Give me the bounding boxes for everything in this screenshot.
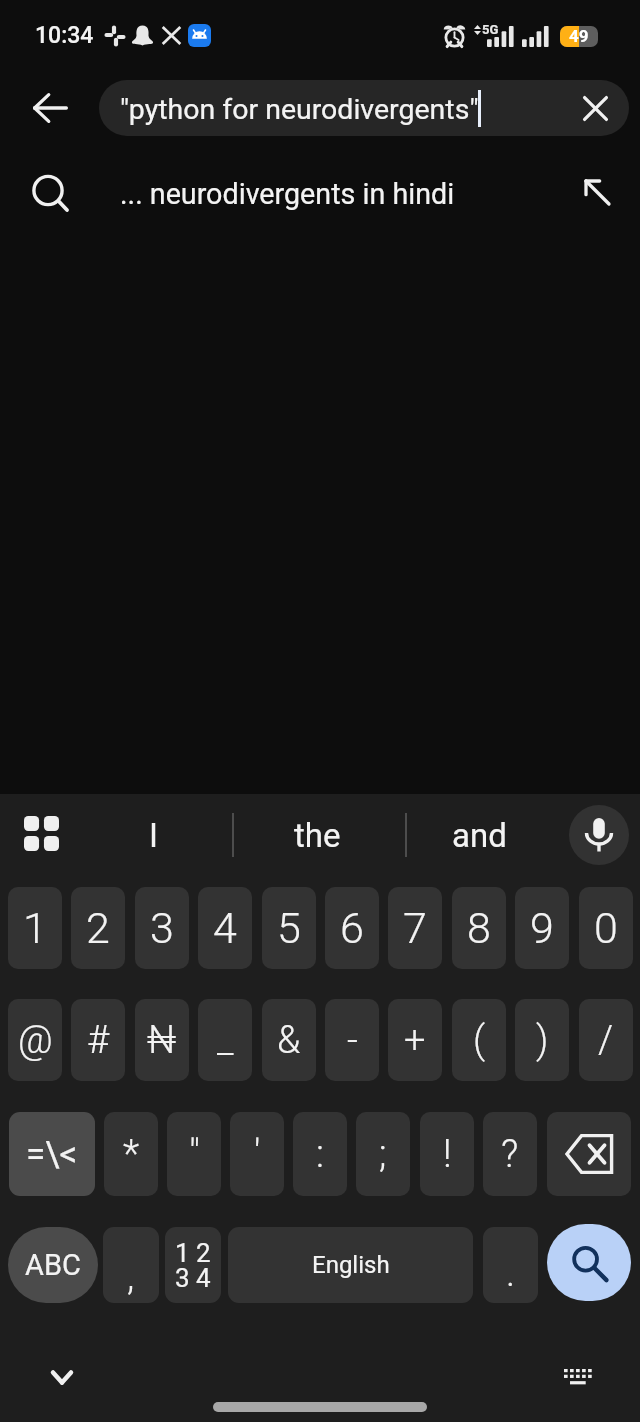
button[interactable]: ' [230, 1112, 284, 1196]
button[interactable]: + [388, 999, 442, 1081]
button[interactable]: Clear search [569, 82, 621, 134]
button[interactable]: ? [483, 1112, 537, 1196]
staticText: 1 2 [175, 1238, 211, 1268]
button[interactable]: ! [420, 1112, 474, 1196]
staticText: ( [473, 1018, 486, 1063]
staticText: English [312, 1251, 390, 1279]
staticText: 4 [213, 903, 237, 953]
button[interactable]: , [103, 1227, 159, 1303]
staticText: ... neurodivergents in hindi [120, 177, 455, 211]
button[interactable]: 8 [452, 887, 506, 969]
button[interactable]: English [228, 1227, 473, 1303]
button[interactable]: and [424, 794, 534, 876]
button[interactable]: "python for neurodivergents" [99, 80, 629, 136]
staticText: & [277, 1018, 301, 1063]
staticText: + [404, 1018, 426, 1063]
staticText: 49 [569, 26, 589, 46]
button[interactable]: Back [18, 76, 82, 140]
staticText: ABC [25, 1248, 81, 1282]
staticText: , [127, 1255, 135, 1300]
button[interactable]: ( [452, 999, 506, 1081]
staticText: * [123, 1132, 140, 1177]
button[interactable]: : [293, 1112, 347, 1196]
staticText: - [347, 1018, 358, 1063]
button[interactable] [547, 1112, 631, 1196]
button[interactable]: 7 [388, 887, 442, 969]
staticText: ' [254, 1132, 261, 1177]
button[interactable]: the [262, 794, 372, 876]
staticText: 3 [150, 903, 174, 953]
staticText: 3 4 [175, 1263, 211, 1293]
button[interactable]: ABC [8, 1227, 98, 1303]
staticText: 10:34 [35, 22, 94, 49]
button[interactable]: Change keyboard [550, 1349, 606, 1405]
staticText: _ [217, 1018, 234, 1063]
staticText: " [189, 1132, 200, 1177]
button[interactable]: I [98, 794, 208, 876]
button[interactable]: 2 [71, 887, 125, 969]
staticText: 1 [23, 903, 47, 953]
staticText: : [316, 1132, 324, 1177]
staticText: 9 [530, 903, 554, 953]
button[interactable]: 3 [135, 887, 189, 969]
button[interactable]: - [325, 999, 379, 1081]
staticText: 5 [277, 903, 301, 953]
button[interactable]: ; [356, 1112, 410, 1196]
staticText: # [87, 1018, 110, 1063]
staticText: I [149, 816, 158, 855]
button[interactable]: " [167, 1112, 221, 1196]
button[interactable]: 4 [198, 887, 252, 969]
staticText: "python for neurodivergents" [120, 93, 479, 126]
button[interactable]: ₦ [135, 999, 189, 1081]
staticText: and [452, 816, 507, 855]
staticText: . [506, 1251, 516, 1296]
staticText: 7 [403, 903, 427, 953]
button[interactable]: ) [515, 999, 569, 1081]
button[interactable] [547, 1224, 631, 1301]
button[interactable]: ... neurodivergents in hindi [0, 152, 640, 236]
staticText: ; [379, 1132, 387, 1177]
staticText: ? [501, 1132, 519, 1177]
button[interactable]: Hide keyboard [34, 1349, 90, 1405]
button[interactable]: * [104, 1112, 158, 1196]
button[interactable]: # [71, 999, 125, 1081]
button[interactable]: Voice input [569, 805, 629, 865]
button[interactable]: =\< [9, 1112, 95, 1196]
button[interactable]: / [579, 999, 633, 1081]
staticText: the [294, 816, 341, 855]
button[interactable]: 1 [8, 887, 62, 969]
staticText: @ [18, 1018, 53, 1063]
button[interactable]: 1 2 [165, 1227, 221, 1303]
button[interactable]: 6 [325, 887, 379, 969]
button[interactable]: & [262, 999, 316, 1081]
staticText: 2 [86, 903, 110, 953]
button[interactable]: . [483, 1227, 538, 1303]
button[interactable]: Use this suggestion [565, 160, 629, 224]
button[interactable]: 5 [262, 887, 316, 969]
button[interactable]: 9 [515, 887, 569, 969]
button[interactable]: 0 [579, 887, 633, 969]
staticText: ₦ [147, 1018, 177, 1063]
button[interactable]: @ [8, 999, 62, 1081]
staticText: / [598, 1018, 614, 1063]
staticText: 5G [482, 22, 499, 37]
staticText: ! [443, 1132, 452, 1177]
staticText: 8 [467, 903, 491, 953]
staticText: 0 [594, 903, 618, 953]
staticText: =\< [26, 1134, 78, 1175]
button[interactable]: Keyboard menu [14, 806, 68, 860]
staticText: 6 [340, 903, 364, 953]
staticText: ) [536, 1018, 549, 1063]
button[interactable]: _ [198, 999, 252, 1081]
